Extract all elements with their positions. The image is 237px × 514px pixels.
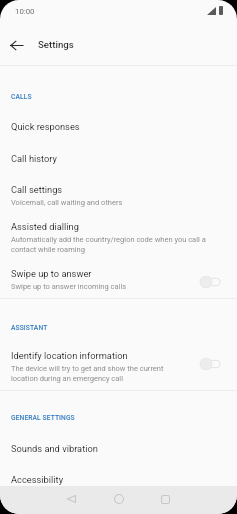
- button[interactable]: Call history: [0, 142, 237, 175]
- button[interactable]: Home: [95, 485, 142, 513]
- button[interactable]: Back: [0, 29, 32, 61]
- staticText: Identify location information: [11, 350, 128, 361]
- button[interactable]: Toggle: [200, 276, 220, 288]
- button[interactable]: Recents: [142, 485, 189, 513]
- button[interactable]: Swipe up to answer: [0, 260, 237, 298]
- button[interactable]: Back: [48, 485, 95, 513]
- staticText: Accessibility: [11, 474, 64, 485]
- button[interactable]: Quick responses: [0, 110, 237, 142]
- staticText: GENERAL SETTINGS: [11, 414, 75, 422]
- staticText: Automatically add the country/region cod…: [11, 234, 220, 254]
- button[interactable]: Identify location information: [0, 344, 237, 389]
- staticText: Swipe up to answer: [11, 268, 92, 279]
- button[interactable]: Toggle: [200, 358, 220, 370]
- button[interactable]: Call settings: [0, 175, 237, 215]
- staticText: CALLS: [11, 93, 32, 101]
- button[interactable]: Sounds and vibration: [0, 424, 237, 472]
- staticText: Quick responses: [11, 121, 80, 132]
- staticText: The device will try to get and show the …: [11, 363, 186, 383]
- staticText: Sounds and vibration: [11, 443, 98, 454]
- staticText: Swipe up to answer incoming calls: [11, 281, 127, 291]
- staticText: Call settings: [11, 184, 63, 195]
- button[interactable]: Assisted dialling: [0, 215, 237, 260]
- staticText: ASSISTANT: [11, 324, 48, 332]
- staticText: Assisted dialling: [11, 221, 79, 232]
- staticText: Settings: [38, 39, 74, 50]
- staticText: Voicemail, call waiting and others: [11, 197, 123, 207]
- button[interactable]: Accessibility: [0, 472, 237, 486]
- staticText: Call history: [11, 153, 57, 164]
- staticText: 10:00: [15, 7, 35, 16]
